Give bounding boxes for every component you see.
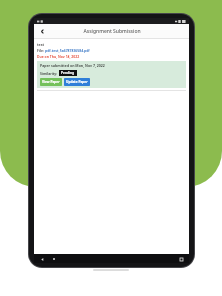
staticText: View Paper bbox=[42, 80, 60, 84]
staticText: test bbox=[37, 42, 45, 47]
staticText: File: bbox=[37, 48, 45, 53]
staticText: Similarity: bbox=[40, 71, 59, 76]
button[interactable]: Recent apps bbox=[177, 255, 185, 263]
button[interactable]: Back bbox=[38, 255, 46, 263]
button[interactable]: Back bbox=[36, 25, 48, 37]
staticText: Assignment Submission bbox=[83, 28, 141, 35]
staticText: Pending bbox=[61, 71, 75, 75]
button[interactable]: pdf-test_5a6787836584.pdf bbox=[45, 48, 90, 53]
staticText: Due on Thu, Nov 14, 2022 bbox=[37, 54, 80, 59]
staticText: Paper submitted on Mon, Nov 7, 2022 bbox=[40, 63, 105, 68]
button[interactable]: View Paper bbox=[40, 78, 62, 86]
button[interactable]: Home bbox=[50, 255, 58, 263]
button[interactable]: Update Paper bbox=[64, 78, 90, 86]
staticText: Update Paper bbox=[66, 80, 88, 84]
